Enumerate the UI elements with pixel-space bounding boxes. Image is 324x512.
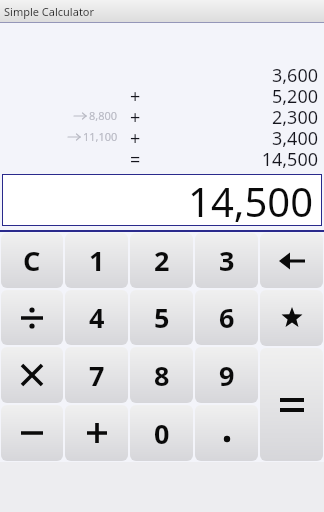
button[interactable] (1, 347, 63, 403)
staticText: 9 (219, 357, 235, 394)
staticText: 2,300 (271, 105, 318, 126)
staticText: + (130, 84, 141, 105)
staticText: 14,500 (188, 174, 314, 226)
staticText: 1 (89, 242, 105, 279)
staticText: 5,200 (271, 84, 318, 105)
staticText: 3,400 (271, 126, 318, 147)
button[interactable]: 4 (65, 290, 128, 345)
button[interactable]: 0 (130, 405, 193, 461)
staticText: 5 (154, 299, 170, 336)
button[interactable]: 2 (130, 233, 193, 288)
staticText: 4 (89, 299, 105, 336)
button[interactable] (65, 405, 128, 461)
button[interactable]: Backspace (260, 233, 323, 288)
staticText: 6 (219, 299, 235, 336)
button[interactable]: 3 (195, 233, 258, 288)
button[interactable] (1, 405, 63, 461)
staticText: 11,100 (83, 129, 118, 144)
button[interactable]: 9 (195, 347, 258, 403)
staticText: 3,600 (271, 63, 318, 84)
button[interactable] (195, 405, 258, 461)
staticText: = (130, 147, 141, 168)
staticText: 0 (154, 415, 170, 452)
staticText: 7 (89, 357, 105, 394)
staticText: C (23, 242, 41, 279)
staticText: 8,800 (89, 108, 118, 123)
button[interactable]: 7 (65, 347, 128, 403)
button[interactable]: 1 (65, 233, 128, 288)
button[interactable]: Equals (260, 348, 323, 461)
button[interactable]: 14,500 (2, 174, 322, 226)
staticText: + (130, 105, 141, 126)
staticText: 2 (154, 242, 170, 279)
staticText: Simple Calculator (4, 4, 95, 19)
staticText: 3 (219, 242, 235, 279)
button[interactable]: C (1, 233, 63, 288)
button[interactable]: 5 (130, 290, 193, 345)
staticText: 8 (154, 357, 170, 394)
button[interactable]: Favorite (260, 290, 323, 346)
staticText: + (130, 126, 141, 147)
button[interactable]: 8 (130, 347, 193, 403)
button[interactable]: 6 (195, 290, 258, 345)
staticText: 14,500 (261, 147, 318, 168)
button[interactable] (1, 290, 63, 345)
